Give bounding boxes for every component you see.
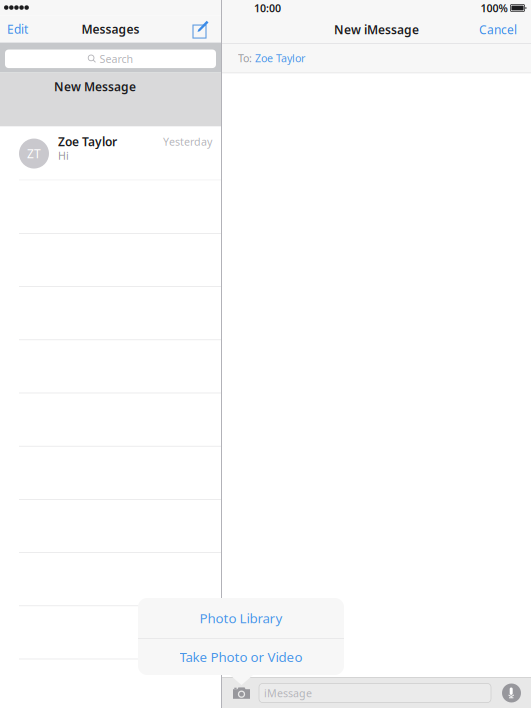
staticText: Hi bbox=[58, 148, 69, 163]
button[interactable]: Record Audio Message bbox=[491, 678, 531, 708]
staticText: Yesterday bbox=[163, 135, 212, 149]
staticText: New Message bbox=[54, 79, 136, 94]
button[interactable]: Zoe Taylor bbox=[255, 51, 305, 65]
staticText: iMessage bbox=[264, 686, 312, 700]
button[interactable]: Compose New Message bbox=[192, 16, 221, 43]
staticText: New iMessage bbox=[334, 21, 419, 37]
button[interactable]: Search bbox=[5, 50, 216, 68]
button[interactable]: Photo Library bbox=[138, 598, 344, 638]
staticText: 10:00 bbox=[254, 1, 281, 15]
staticText: Photo Library bbox=[199, 609, 282, 627]
staticText: To: bbox=[238, 51, 255, 65]
button[interactable]: Take Photo or Video bbox=[138, 639, 344, 675]
staticText: Messages bbox=[81, 21, 139, 37]
staticText: Zoe Taylor bbox=[255, 51, 305, 65]
staticText: Take Photo or Video bbox=[179, 648, 302, 666]
staticText: Cancel bbox=[479, 21, 517, 37]
button[interactable]: Cancel bbox=[479, 16, 531, 43]
staticText: Zoe Taylor bbox=[58, 134, 117, 149]
staticText: Edit bbox=[7, 21, 28, 37]
button[interactable]: ZT bbox=[0, 127, 221, 180]
button[interactable]: New Message bbox=[0, 73, 221, 127]
button[interactable]: Edit bbox=[0, 16, 37, 43]
staticText: 100% bbox=[480, 1, 507, 15]
button[interactable]: Camera bbox=[222, 678, 259, 708]
staticText: ZT bbox=[27, 146, 41, 161]
staticText: Search bbox=[99, 52, 133, 66]
